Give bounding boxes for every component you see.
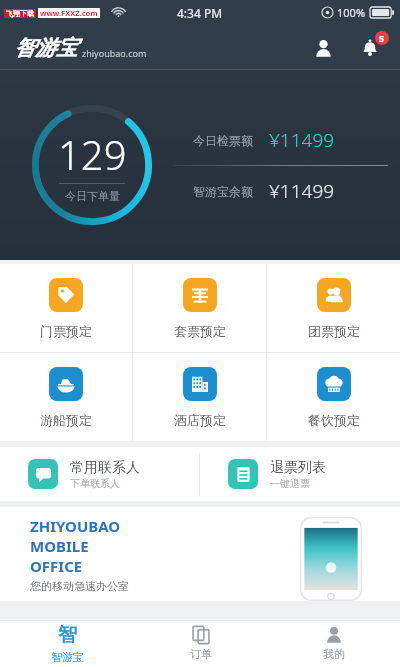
staticText: 套票预定 bbox=[174, 323, 226, 339]
staticText: 飞翔下载 bbox=[6, 9, 34, 18]
staticText: 酒店预定 bbox=[174, 412, 226, 428]
staticText: 智游宝 bbox=[51, 650, 84, 664]
staticText: 智游宝余额 bbox=[173, 184, 253, 199]
staticText: 常用联系人 bbox=[70, 459, 140, 477]
staticText: 4:34 PM bbox=[177, 5, 223, 21]
button[interactable]: 订单 bbox=[134, 620, 267, 667]
button[interactable]: 游船预定 bbox=[0, 353, 132, 441]
staticText: www.FXXZ.com bbox=[40, 8, 98, 18]
staticText: 订单 bbox=[190, 647, 212, 661]
staticText: 5 bbox=[379, 32, 385, 44]
staticText: zhiyoubao.com bbox=[82, 47, 147, 59]
button[interactable]: 套票预定 bbox=[133, 264, 266, 352]
button[interactable]: 门票预定 bbox=[0, 264, 132, 352]
button[interactable]: Profile bbox=[308, 33, 338, 63]
staticText: MOBILE bbox=[30, 536, 89, 556]
button[interactable]: 退票列表 bbox=[200, 447, 400, 501]
button[interactable]: 智 bbox=[0, 620, 134, 667]
staticText: 129 bbox=[58, 127, 127, 181]
staticText: 我的 bbox=[323, 647, 345, 661]
staticText: 今日检票额 bbox=[173, 133, 253, 148]
staticText: 一键退票 bbox=[270, 477, 310, 490]
staticText: OFFICE bbox=[30, 556, 83, 576]
staticText: 餐饮预定 bbox=[308, 412, 360, 428]
staticText: ¥11499 bbox=[269, 178, 335, 204]
staticText: 您的移动急速办公室 bbox=[30, 579, 129, 593]
staticText: ZHIYOUBAO bbox=[30, 516, 121, 536]
staticText: 智游宝 bbox=[14, 35, 77, 61]
button[interactable]: Notifications bbox=[354, 32, 386, 64]
button[interactable]: 常用联系人 bbox=[0, 447, 199, 501]
staticText: 智 bbox=[58, 623, 77, 647]
staticText: ¥11499 bbox=[269, 127, 335, 153]
button[interactable]: 团票预定 bbox=[267, 264, 400, 352]
button[interactable]: ZHIYOUBAO bbox=[0, 507, 400, 601]
button[interactable]: 酒店预定 bbox=[133, 353, 266, 441]
staticText: 门票预定 bbox=[40, 323, 92, 339]
staticText: 下单联系人 bbox=[70, 477, 120, 490]
staticText: 游船预定 bbox=[40, 412, 92, 428]
button[interactable]: 餐饮预定 bbox=[267, 353, 400, 441]
staticText: 退票列表 bbox=[270, 459, 326, 477]
button[interactable]: 我的 bbox=[267, 620, 400, 667]
staticText: 今日下单量 bbox=[65, 189, 120, 203]
staticText: 100% bbox=[337, 5, 366, 20]
staticText: 团票预定 bbox=[308, 323, 360, 339]
